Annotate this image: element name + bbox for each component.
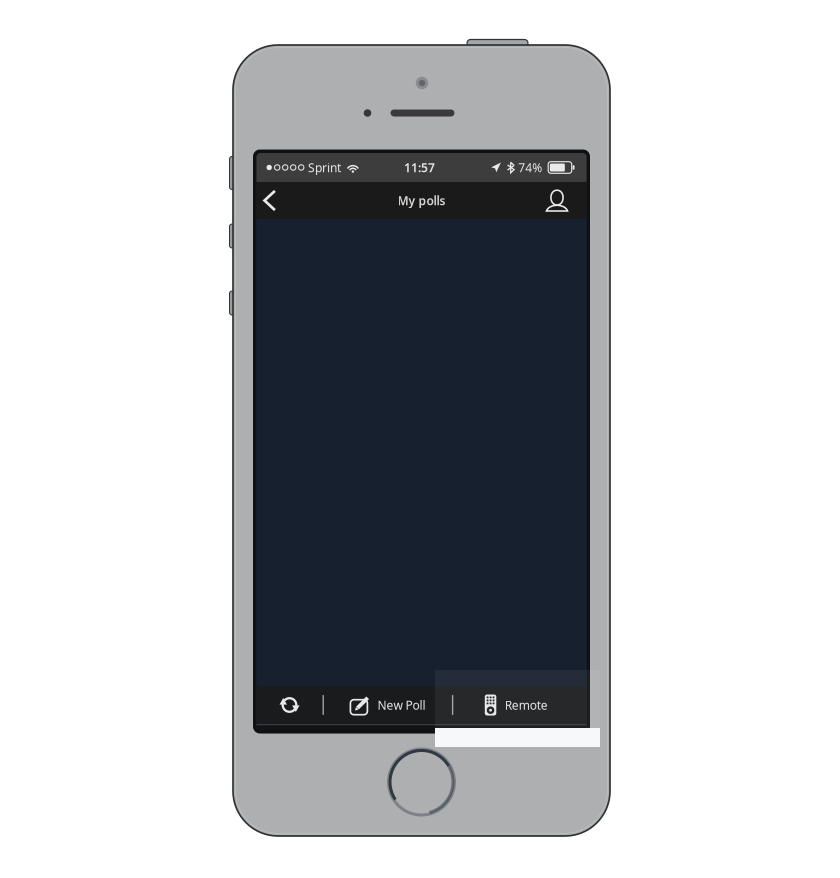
staticText: Remote: [505, 697, 548, 713]
staticText: Sprint: [308, 159, 341, 175]
staticText: My polls: [397, 192, 445, 208]
button[interactable]: Refresh: [256, 686, 322, 724]
button[interactable]: Back: [256, 182, 300, 219]
staticText: New Poll: [377, 697, 425, 713]
button[interactable]: Remote: [453, 686, 579, 724]
button[interactable]: New Poll: [324, 686, 452, 724]
button[interactable]: Profile: [536, 182, 586, 219]
staticText: 74%: [518, 159, 542, 175]
staticText: 11:57: [404, 159, 435, 175]
